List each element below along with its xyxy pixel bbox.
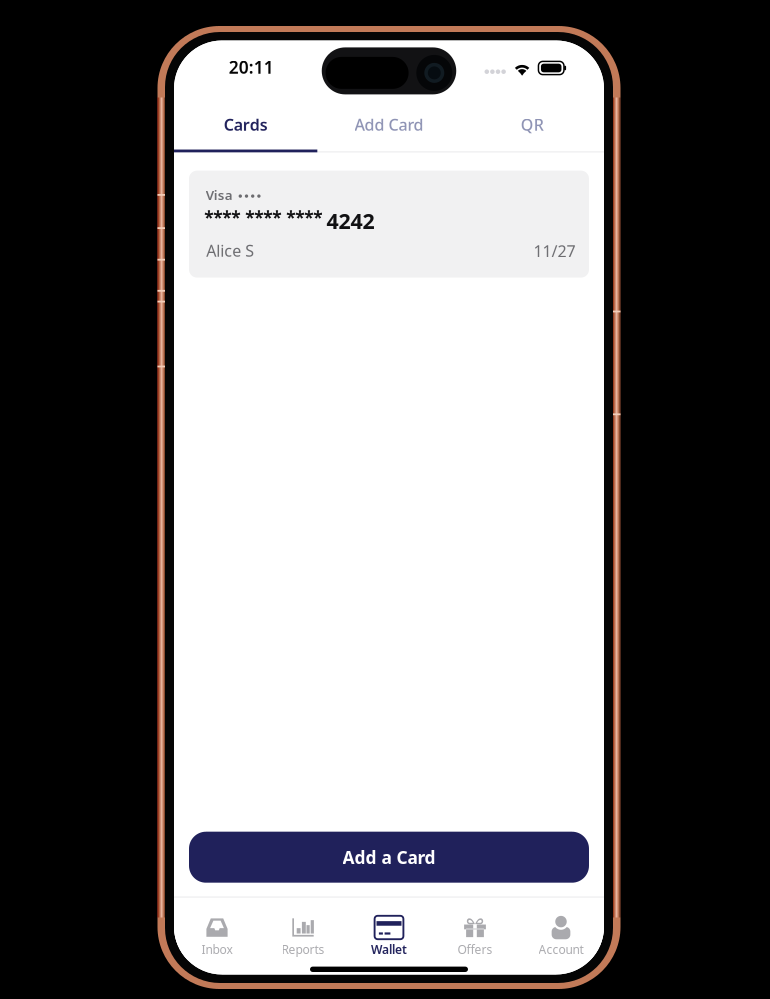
staticText: Account (538, 941, 583, 957)
staticText: 20:11 (229, 56, 274, 79)
staticText: Offers (457, 941, 492, 957)
button[interactable]: QR (461, 96, 604, 152)
staticText: Reports (281, 941, 324, 957)
staticText: Wallet (371, 941, 407, 957)
staticText: Cards (224, 114, 268, 135)
staticText: Add Card (354, 114, 423, 135)
button[interactable]: Cards (174, 96, 317, 152)
button[interactable]: Visa (189, 171, 589, 278)
button[interactable]: Add a Card (189, 832, 589, 883)
staticText: **** **** **** (204, 206, 322, 229)
staticText: QR (521, 114, 544, 135)
staticText: Inbox (201, 941, 232, 957)
button[interactable]: Add Card (317, 96, 461, 152)
button[interactable]: Account (518, 903, 604, 959)
button[interactable]: Wallet (346, 903, 432, 959)
staticText: Visa (206, 186, 233, 204)
staticText: 4242 (326, 206, 374, 235)
button[interactable]: Offers (432, 903, 518, 959)
staticText: Add a Card (342, 846, 435, 869)
staticText: Alice S (206, 240, 254, 261)
button[interactable]: Inbox (174, 903, 260, 959)
button[interactable]: Reports (260, 903, 346, 959)
staticText: 11/27 (534, 240, 576, 262)
